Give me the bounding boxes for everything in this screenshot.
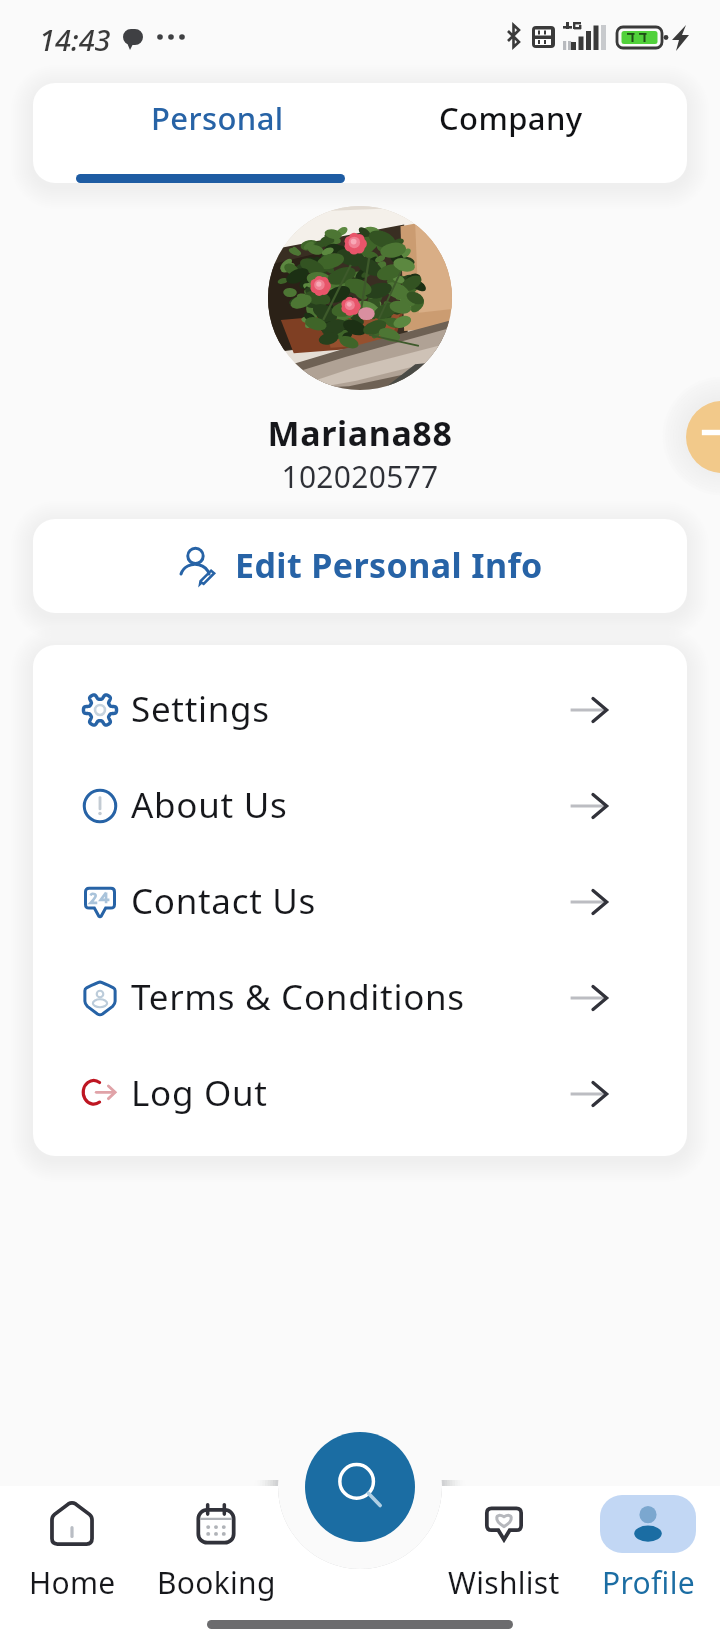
button[interactable]: Chat support (686, 401, 720, 473)
staticText: About Us (131, 781, 288, 829)
button[interactable]: About Us (33, 758, 687, 854)
button[interactable]: Personal (45, 83, 390, 183)
staticText: Wishlist (448, 1562, 560, 1603)
staticText: 102020577 (0, 456, 720, 497)
staticText: Personal (151, 97, 284, 139)
staticText: Log Out (131, 1069, 268, 1117)
staticText: Profile (602, 1562, 695, 1603)
staticText: Home (29, 1562, 116, 1603)
staticText: 14:43 (39, 20, 111, 59)
button[interactable]: Edit Personal Info (33, 519, 687, 613)
staticText: Booking (157, 1562, 276, 1603)
button[interactable]: Contact Us (33, 854, 687, 950)
staticText: Contact Us (131, 877, 317, 925)
staticText: Settings (131, 685, 270, 733)
button[interactable]: Profile photo (268, 206, 452, 390)
button[interactable]: Log Out (33, 1046, 687, 1142)
staticText: Edit Personal Info (235, 542, 543, 588)
button[interactable]: Settings (33, 662, 687, 758)
button[interactable]: Booking (144, 1495, 288, 1605)
staticText: Terms & Conditions (131, 973, 465, 1021)
staticText: Company (439, 97, 583, 139)
button[interactable]: Profile (576, 1495, 720, 1605)
button[interactable]: Company (356, 83, 665, 183)
button[interactable]: Search (305, 1432, 415, 1542)
button[interactable]: Terms & Conditions (33, 950, 687, 1046)
staticText: Mariana88 (0, 410, 720, 456)
button[interactable]: Home (0, 1495, 144, 1605)
button[interactable]: Wishlist (432, 1495, 576, 1605)
